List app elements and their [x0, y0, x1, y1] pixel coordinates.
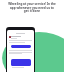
staticText: Wheeling at your service! In the app whe…: [8, 2, 56, 12]
button[interactable]: [11, 45, 31, 48]
button[interactable]: [11, 59, 31, 66]
